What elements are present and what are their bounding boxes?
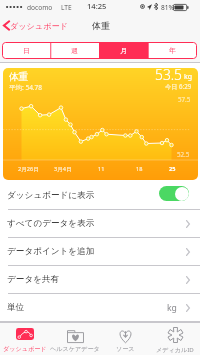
staticText: 11 <box>98 165 105 173</box>
button[interactable]: 年 <box>148 42 197 59</box>
staticText: 単位 <box>7 302 25 313</box>
button[interactable]: 日 <box>2 42 50 59</box>
button[interactable]: ダッシュボードに表示 <box>0 182 200 210</box>
button[interactable]: データを共有 <box>0 266 200 294</box>
staticText: すべてのデータを表示 <box>7 218 95 229</box>
staticText: 18 <box>136 165 143 173</box>
staticText: ヘルスケアデータ <box>50 345 100 353</box>
staticText: kg <box>184 72 193 82</box>
button[interactable]: すべてのデータを表示 <box>0 210 200 238</box>
staticText: 25 <box>169 165 176 173</box>
staticText: 週 <box>71 46 78 55</box>
staticText: 体重 <box>92 20 110 31</box>
staticText: kg <box>167 302 177 314</box>
staticText: LTE <box>61 3 72 12</box>
button[interactable]: ダッシュボード <box>0 322 50 355</box>
staticText: 日 <box>23 46 30 55</box>
other: Show on Dashboard <box>159 186 189 201</box>
staticText: 月 <box>120 46 127 55</box>
staticText: データポイントを追加 <box>7 246 95 257</box>
staticText: ソース <box>116 345 135 353</box>
button[interactable]: 月 <box>99 42 148 59</box>
staticText: メディカルID <box>156 345 194 353</box>
staticText: ダッシュボード <box>10 21 68 31</box>
staticText: ダッシュボード <box>3 345 47 353</box>
staticText: 14:25 <box>87 1 107 11</box>
button[interactable]: データポイントを追加 <box>0 238 200 266</box>
staticText: 53.5 <box>155 68 183 84</box>
button[interactable]: ソース <box>100 322 150 355</box>
staticText: 今日 6:29 <box>165 82 192 90</box>
staticText: 81% <box>161 3 175 12</box>
button[interactable]: 単位 <box>0 294 200 322</box>
staticText: 3月4日 <box>54 165 72 173</box>
staticText: 体重 <box>9 71 29 83</box>
staticText: 2月26日 <box>18 165 39 173</box>
staticText: データを共有 <box>7 274 60 285</box>
staticText: 52.5 <box>177 150 190 158</box>
button[interactable]: ヘルスケアデータ <box>50 322 100 355</box>
button[interactable]: 週 <box>50 42 99 59</box>
staticText: 年 <box>169 46 176 55</box>
staticText: docomo <box>27 3 53 12</box>
staticText: 57.5 <box>178 95 191 103</box>
staticText: ダッシュボードに表示 <box>7 190 95 201</box>
button[interactable]: ダッシュボード <box>3 20 68 31</box>
staticText: 平均: 54.78 <box>9 83 43 92</box>
button[interactable]: メディカルID <box>150 322 200 355</box>
